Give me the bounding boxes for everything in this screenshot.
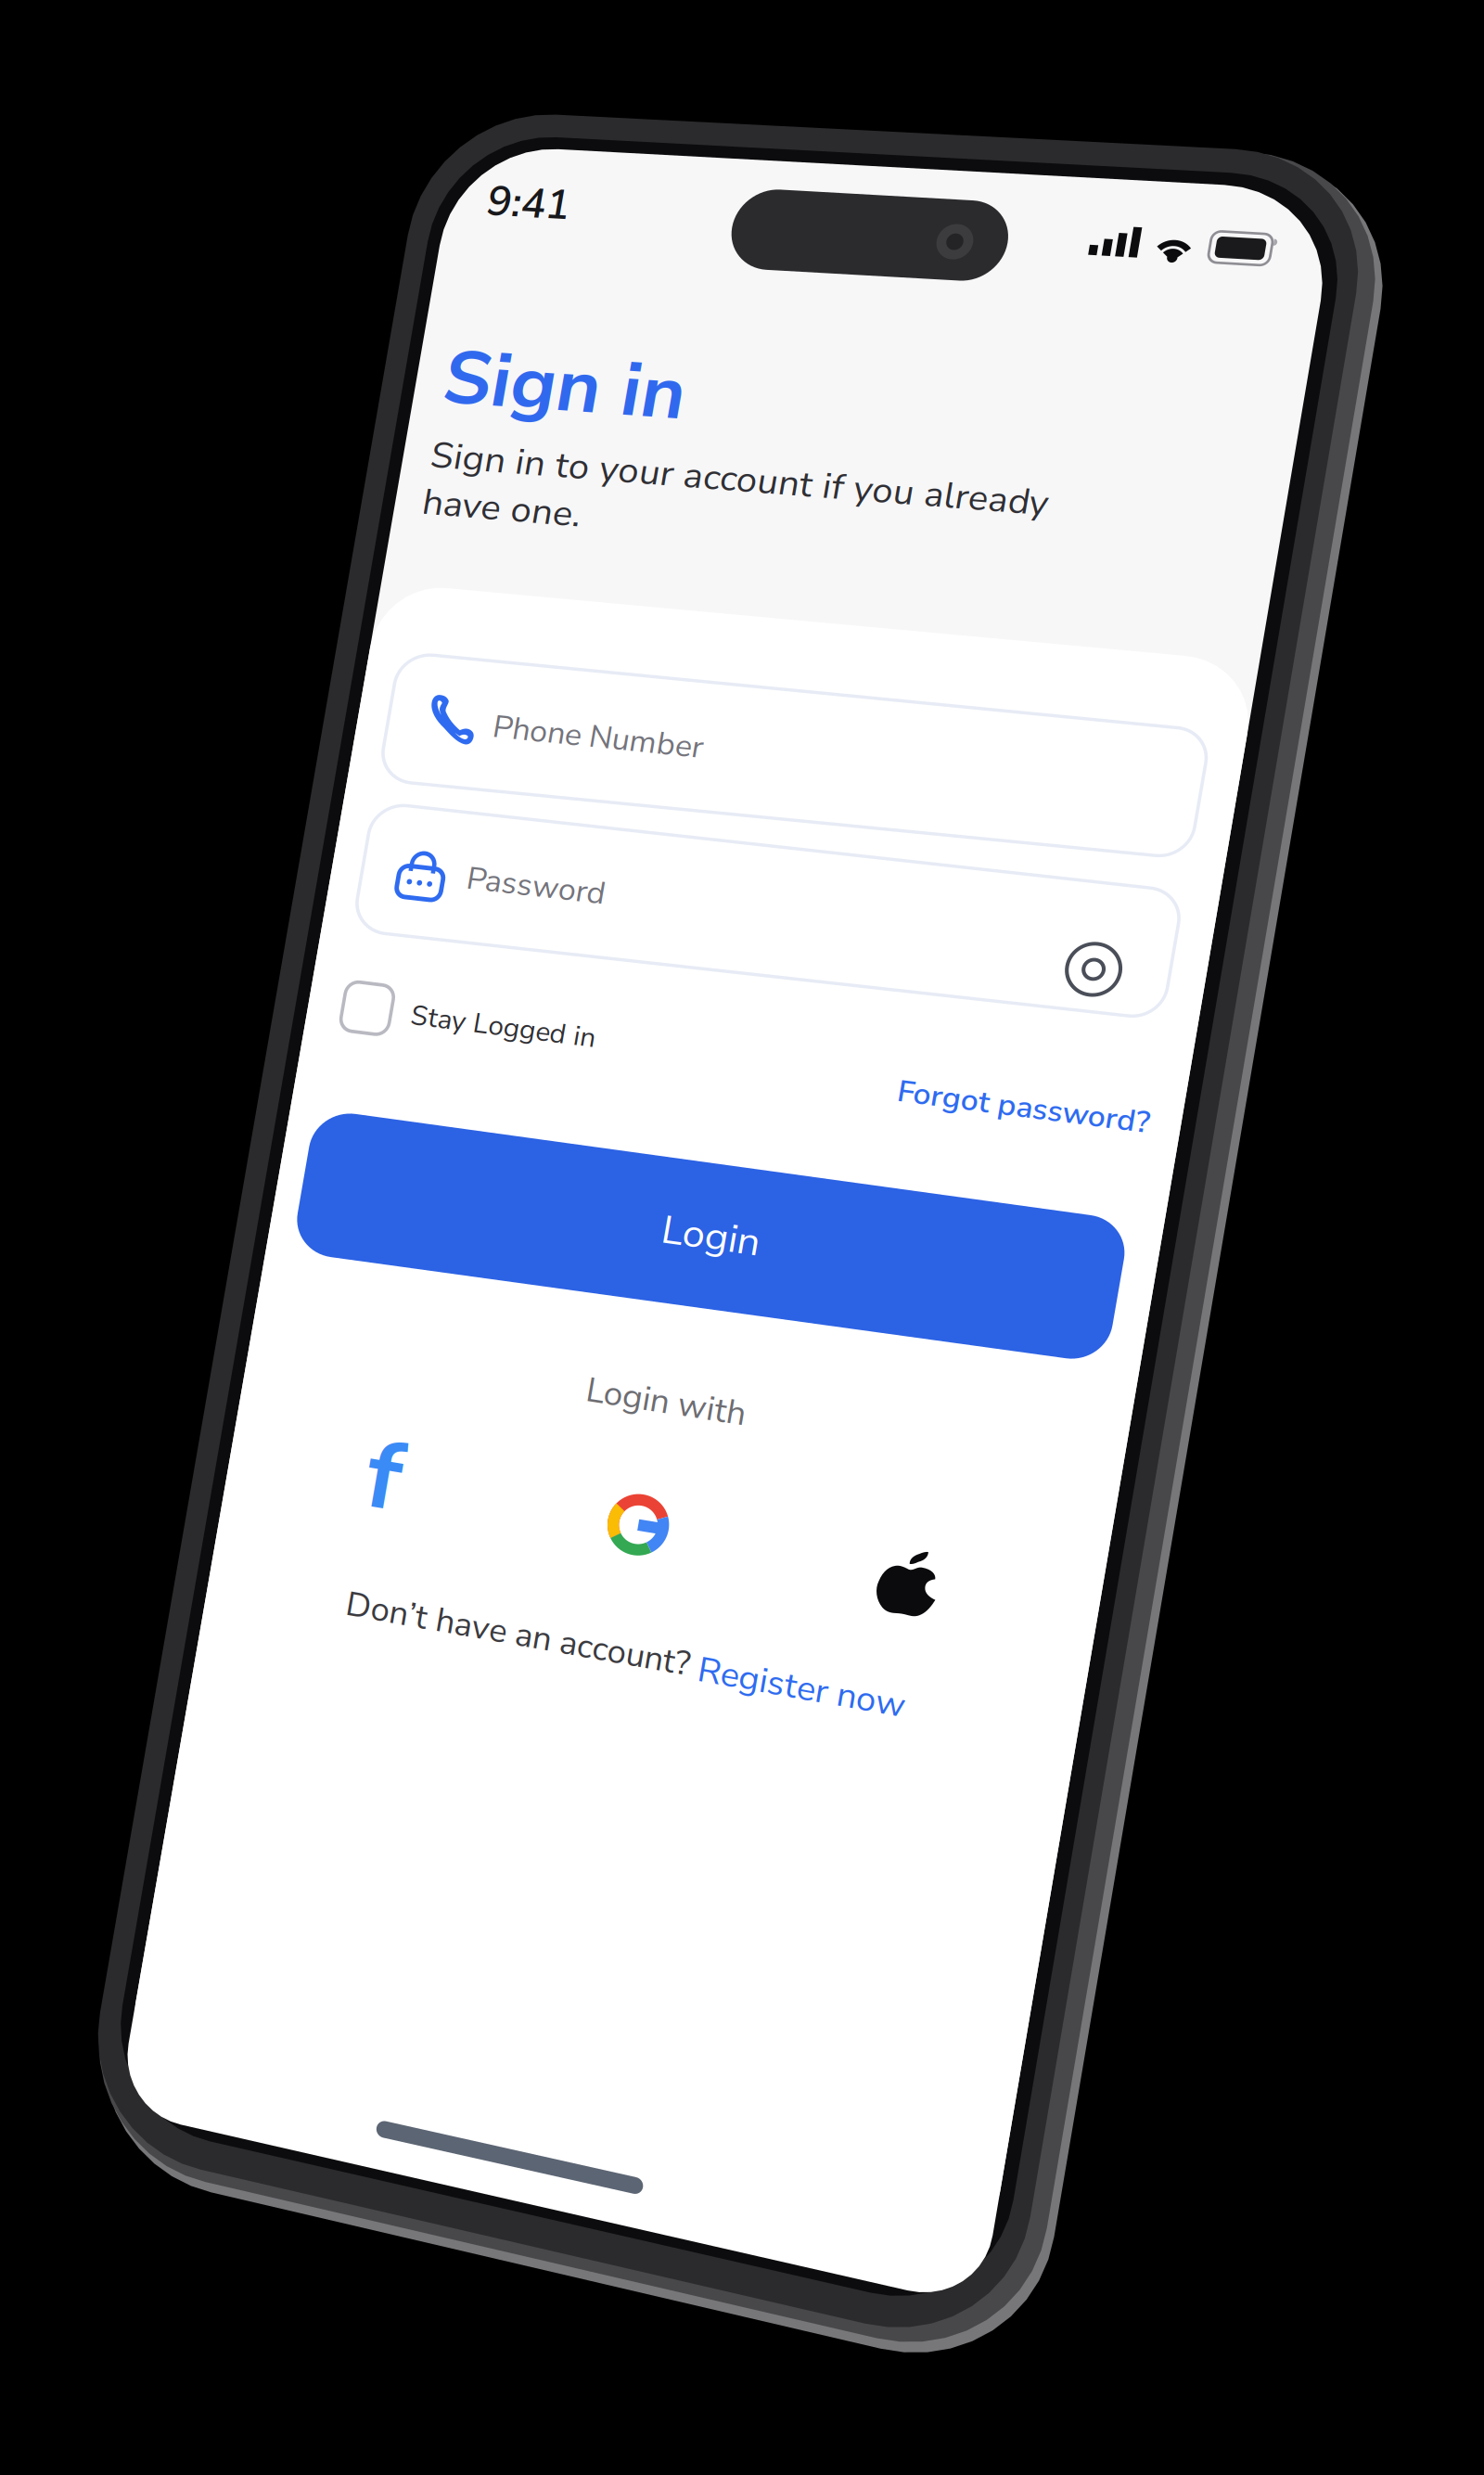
button[interactable]: Login [0, 0, 681, 124]
